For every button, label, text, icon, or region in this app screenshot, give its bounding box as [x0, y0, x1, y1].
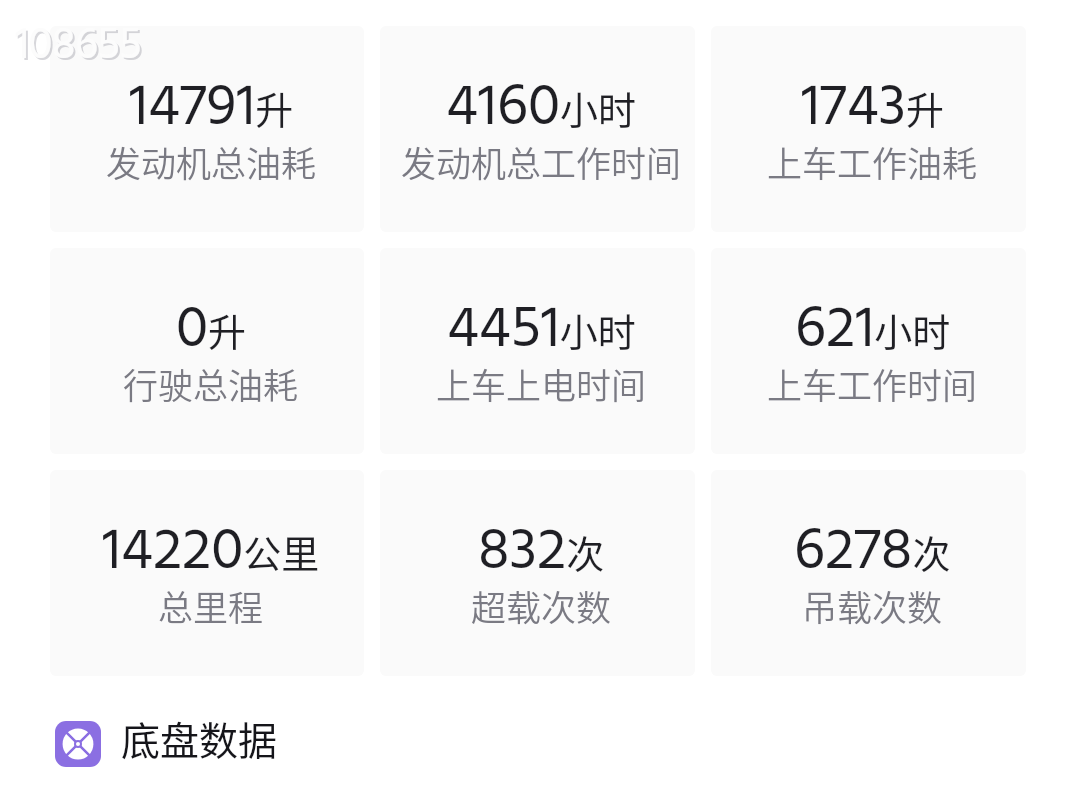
staticText: 发动机总油耗 [106, 136, 317, 187]
button[interactable]: 底盘数据 [55, 716, 278, 772]
staticText: 行驶总油耗 [123, 358, 299, 409]
staticText: 4160小时 [446, 62, 637, 156]
button[interactable]: 14220公里 [50, 470, 364, 676]
button[interactable]: 4160小时 [380, 26, 695, 232]
staticText: 上车工作时间 [767, 358, 978, 409]
staticText: 发动机总工作时间 [401, 136, 682, 187]
button[interactable]: 0升 [50, 248, 364, 454]
button[interactable]: 14791升 [50, 26, 364, 232]
staticText: 14791升 [129, 62, 294, 156]
staticText: 4451小时 [447, 284, 636, 378]
button[interactable]: 832次 [380, 470, 695, 676]
staticText: 上车上电时间 [436, 358, 647, 409]
staticText: 6278次 [794, 506, 951, 600]
staticText: 108655 [15, 12, 142, 82]
staticText: 621小时 [795, 284, 951, 378]
staticText: 14220公里 [102, 506, 320, 600]
staticText: 832次 [478, 506, 605, 600]
button[interactable]: 621小时 [711, 248, 1026, 454]
staticText: 上车工作油耗 [767, 136, 978, 187]
staticText: 超载次数 [471, 580, 612, 631]
staticText: 底盘数据 [121, 710, 278, 766]
button[interactable]: 6278次 [711, 470, 1026, 676]
staticText: 总里程 [158, 580, 264, 631]
button[interactable]: 1743升 [711, 26, 1026, 232]
staticText: 1743升 [801, 62, 945, 156]
other: 底盘数据 [55, 721, 101, 767]
staticText: 0升 [176, 284, 247, 378]
button[interactable]: 4451小时 [380, 248, 695, 454]
staticText: 108655 [17, 14, 144, 84]
staticText: 吊载次数 [802, 580, 943, 631]
